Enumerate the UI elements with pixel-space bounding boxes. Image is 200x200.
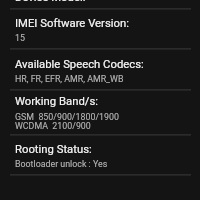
staticText: Rooting Status: <box>15 143 92 156</box>
staticText: Device Model: <box>15 0 86 4</box>
staticText: WCDMA 2100/900 <box>15 121 91 131</box>
staticText: 15 <box>15 33 25 43</box>
staticText: IMEI Software Version: <box>15 17 129 30</box>
button[interactable] <box>0 8 200 48</box>
button[interactable] <box>0 89 200 134</box>
staticText: GSM 850/900/1800/1900 <box>15 112 119 122</box>
button[interactable] <box>0 134 200 174</box>
button[interactable] <box>0 0 200 8</box>
staticText: Bootloader unlock : Yes <box>15 159 108 169</box>
staticText: Working Band/s: <box>15 95 99 108</box>
staticText: Available Speech Codecs: <box>15 58 144 71</box>
button[interactable] <box>0 174 200 200</box>
button[interactable] <box>0 48 200 89</box>
staticText: HR, FR, EFR, AMR, AMR_WB <box>15 74 124 84</box>
